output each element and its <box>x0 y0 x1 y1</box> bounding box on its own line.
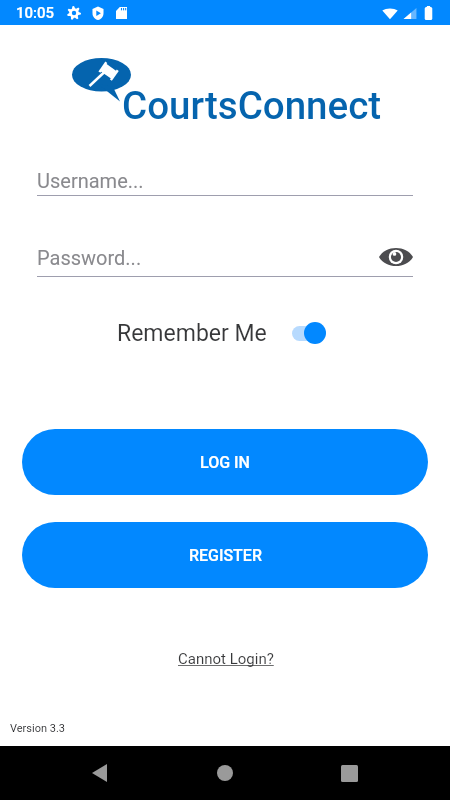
button[interactable]: Home <box>201 749 249 797</box>
staticText: Remember Me <box>117 320 267 347</box>
button[interactable]: Show password <box>375 239 417 275</box>
staticText: Version 3.3 <box>10 722 66 735</box>
staticText: Password... <box>37 246 142 269</box>
staticText: LOG IN <box>200 453 250 472</box>
button[interactable]: Back <box>75 749 123 797</box>
staticText: 10:05 <box>16 4 55 22</box>
staticText: CourtsConnect <box>122 83 382 128</box>
staticText: Username... <box>37 169 144 192</box>
button[interactable]: Cannot Login? <box>178 650 274 668</box>
button[interactable]: LOG IN <box>22 429 428 495</box>
staticText: Cannot Login? <box>178 650 274 668</box>
staticText: REGISTER <box>189 546 262 565</box>
button[interactable]: Recent apps <box>325 749 373 797</box>
button[interactable]: Remember Me <box>117 314 327 352</box>
button[interactable]: REGISTER <box>22 522 428 588</box>
